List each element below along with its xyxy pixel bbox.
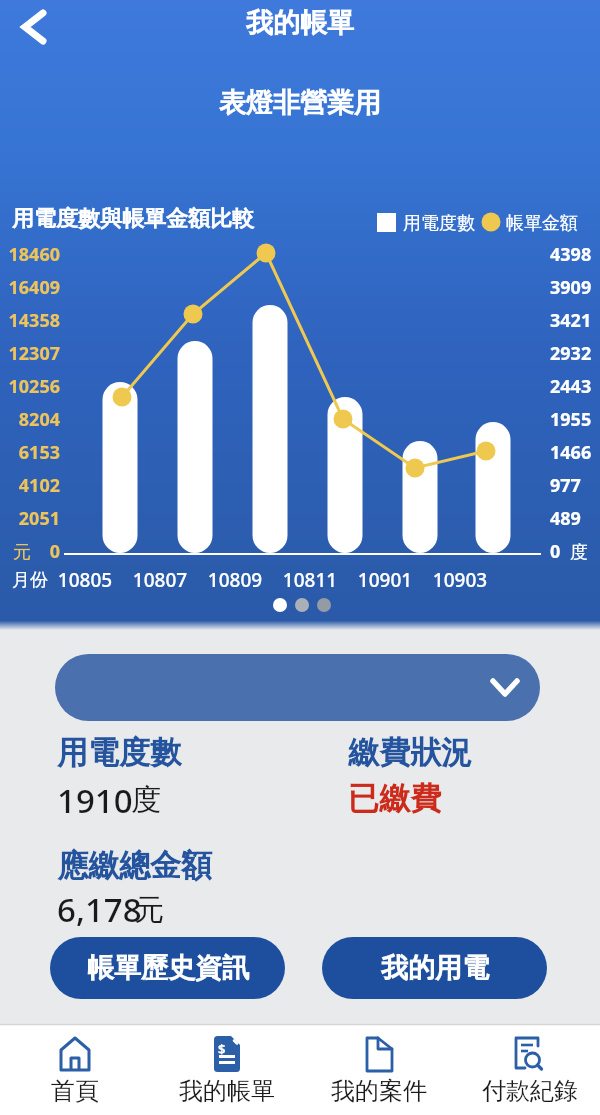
button[interactable]: 我的用電: [322, 937, 547, 999]
button[interactable]: 我的帳單: [157, 1024, 297, 1115]
staticText: 元: [134, 891, 164, 929]
staticText: 10903: [425, 567, 495, 593]
staticText: 8204: [0, 407, 60, 432]
staticText: 1466: [550, 440, 592, 465]
button[interactable]: 我的案件: [309, 1024, 449, 1115]
staticText: 0: [550, 539, 561, 564]
staticText: 6153: [0, 440, 60, 465]
staticText: 2932: [550, 341, 592, 366]
staticText: 月份: [12, 569, 48, 592]
button[interactable]: [10, 5, 58, 53]
staticText: 10805: [50, 567, 120, 593]
staticText: 繳費狀況: [348, 733, 472, 772]
staticText: 10901: [350, 567, 420, 593]
staticText: 度: [570, 541, 588, 564]
staticText: 10807: [125, 567, 195, 593]
staticText: 1910: [57, 778, 133, 823]
staticText: 2443: [550, 374, 592, 399]
staticText: 表燈非營業用: [0, 86, 600, 120]
button[interactable]: [55, 654, 540, 721]
staticText: 用電度數: [403, 212, 475, 235]
staticText: 10809: [200, 567, 270, 593]
staticText: 3421: [550, 308, 592, 333]
staticText: 14358: [0, 308, 60, 333]
staticText: 度: [131, 781, 161, 819]
staticText: 用電度數: [57, 733, 181, 772]
staticText: 付款紀錄: [482, 1076, 578, 1106]
staticText: 0: [0, 539, 60, 564]
staticText: 16409: [0, 275, 60, 300]
staticText: 我的帳單: [0, 6, 600, 40]
staticText: 我的帳單: [179, 1076, 275, 1106]
staticText: 489: [550, 506, 581, 531]
button[interactable]: 付款紀錄: [460, 1024, 600, 1115]
staticText: 用電度數與帳單金額比較: [12, 205, 254, 233]
staticText: 元: [13, 541, 31, 564]
staticText: 已繳費: [348, 779, 441, 818]
staticText: 我的案件: [331, 1076, 427, 1106]
staticText: 18460: [0, 242, 60, 267]
staticText: 4102: [0, 473, 60, 498]
staticText: 12307: [0, 341, 60, 366]
button[interactable]: 首頁: [5, 1024, 145, 1115]
staticText: 帳單歷史資訊: [87, 951, 249, 985]
staticText: 10256: [0, 374, 60, 399]
staticText: 977: [550, 473, 581, 498]
staticText: 4398: [550, 242, 592, 267]
staticText: 6,178: [57, 887, 142, 932]
staticText: 10811: [275, 567, 345, 593]
staticText: $: [218, 1040, 226, 1058]
staticText: 首頁: [51, 1076, 99, 1106]
staticText: 3909: [550, 275, 592, 300]
staticText: 2051: [0, 506, 60, 531]
staticText: 帳單金額: [506, 212, 578, 235]
button[interactable]: 帳單歷史資訊: [50, 937, 285, 999]
staticText: 我的用電: [381, 951, 489, 985]
staticText: 應繳總金額: [57, 846, 212, 885]
staticText: 1955: [550, 407, 592, 432]
